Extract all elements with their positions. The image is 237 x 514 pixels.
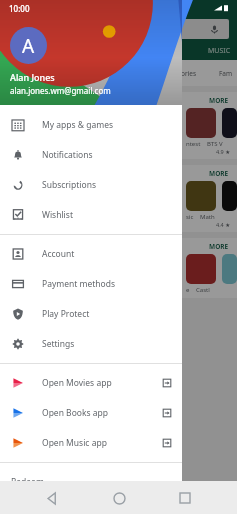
staticText: e bbox=[186, 286, 190, 294]
button[interactable]: Open Books app bbox=[0, 398, 182, 428]
staticText: 4.9 ★ bbox=[216, 148, 231, 155]
staticText: Math bbox=[200, 213, 215, 221]
button[interactable]: Settings bbox=[0, 329, 182, 359]
staticText: My apps & games bbox=[42, 119, 172, 131]
staticText: BTS V bbox=[207, 140, 223, 148]
staticText: 4.4 ★ bbox=[216, 221, 231, 228]
staticText: Account bbox=[42, 248, 172, 260]
button[interactable] bbox=[8, 19, 229, 39]
button[interactable]: Play Protect bbox=[0, 299, 182, 329]
staticText: gories bbox=[177, 69, 197, 78]
staticText: Open Books app bbox=[42, 407, 162, 419]
staticText: Play Protect bbox=[42, 308, 172, 320]
staticText: A bbox=[22, 33, 35, 59]
button[interactable]: Payment methods bbox=[0, 269, 182, 299]
button[interactable]: Open Movies app bbox=[0, 368, 182, 398]
staticText: Subscriptions bbox=[42, 179, 172, 191]
staticText: Notifications bbox=[42, 149, 172, 161]
staticText: ntest bbox=[186, 140, 201, 148]
button[interactable]: Wishlist bbox=[0, 200, 182, 230]
staticText: MORE bbox=[209, 242, 229, 251]
staticText: MUSIC bbox=[208, 46, 231, 56]
staticText: Castl bbox=[196, 286, 210, 294]
button[interactable]: Open Music app bbox=[0, 428, 182, 458]
staticText: 10:00 bbox=[9, 3, 30, 14]
button[interactable]: Account bbox=[0, 239, 182, 269]
button[interactable]: Account avatar bbox=[10, 27, 47, 64]
button[interactable]: Recents bbox=[170, 483, 200, 513]
button[interactable]: Home bbox=[104, 483, 134, 513]
staticText: Open Music app bbox=[42, 437, 162, 449]
staticText: MORE bbox=[209, 169, 229, 178]
button[interactable]: My apps & games bbox=[0, 110, 182, 140]
button[interactable]: Redeem bbox=[0, 467, 182, 497]
staticText: sic bbox=[186, 213, 194, 221]
staticText: Payment methods bbox=[42, 278, 172, 290]
staticText: Open Movies app bbox=[42, 377, 162, 389]
staticText: Settings bbox=[42, 338, 172, 350]
staticText: MORE bbox=[209, 96, 229, 105]
button[interactable]: Back bbox=[37, 483, 67, 513]
staticText: Alan Jones bbox=[10, 71, 55, 83]
staticText: Redeem bbox=[11, 476, 172, 488]
staticText: Wishlist bbox=[42, 209, 172, 221]
staticText: Fam bbox=[219, 69, 233, 78]
button[interactable]: Notifications bbox=[0, 140, 182, 170]
staticText: alan.jones.wm@gmail.com bbox=[10, 85, 111, 96]
button[interactable]: Subscriptions bbox=[0, 170, 182, 200]
